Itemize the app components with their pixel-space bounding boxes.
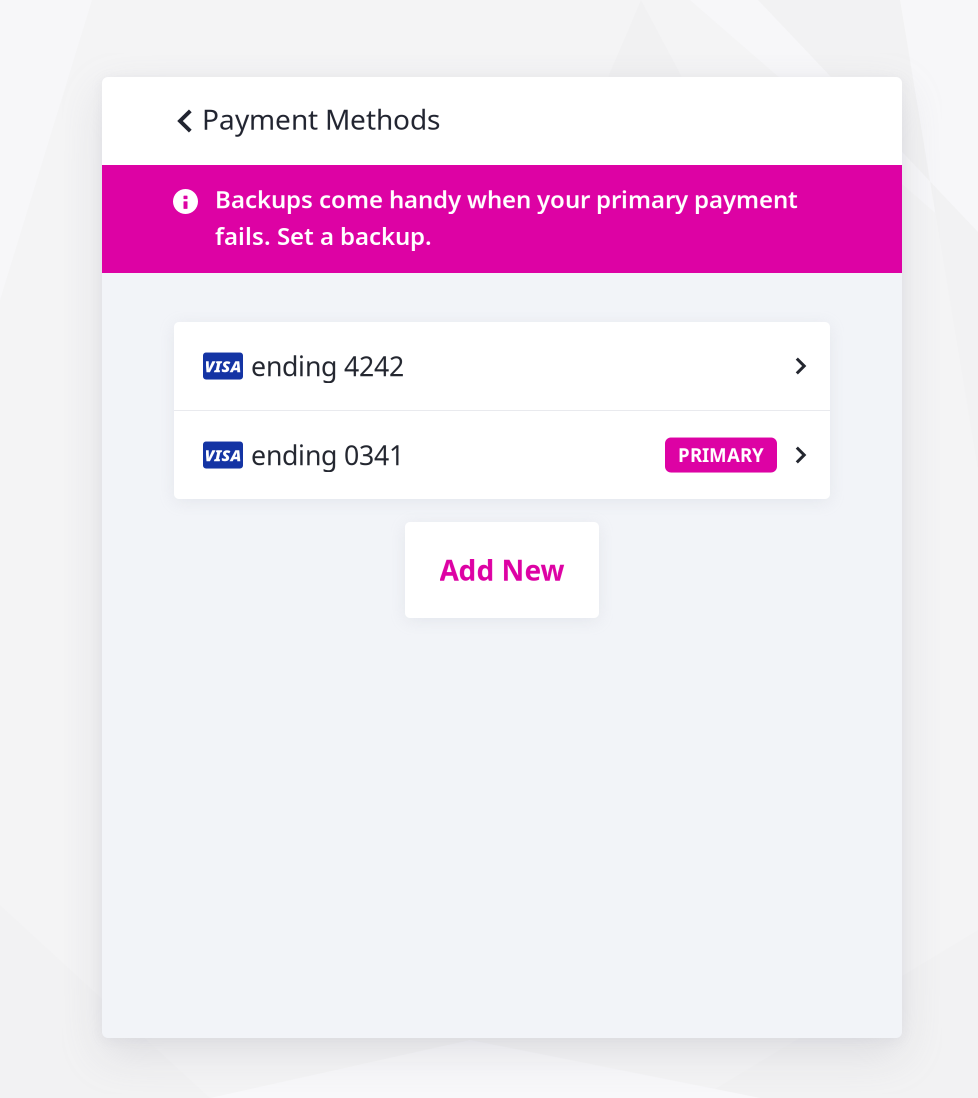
staticText: Backups come handy when your primary pay… — [215, 183, 798, 215]
button[interactable]: VISA — [174, 322, 830, 410]
staticText: VISA — [204, 355, 241, 377]
button[interactable]: Back to Payment Methods — [102, 77, 902, 165]
staticText: VISA — [204, 444, 241, 466]
staticText: ending 4242 — [251, 348, 404, 384]
staticText: fails. Set a backup. — [215, 220, 432, 252]
staticText: Add New — [439, 551, 564, 589]
staticText: ending 0341 — [251, 437, 404, 473]
staticText: PRIMARY — [678, 443, 764, 467]
button[interactable]: VISA — [174, 411, 830, 499]
button[interactable]: Add New — [405, 522, 599, 618]
staticText: Payment Methods — [202, 100, 440, 138]
